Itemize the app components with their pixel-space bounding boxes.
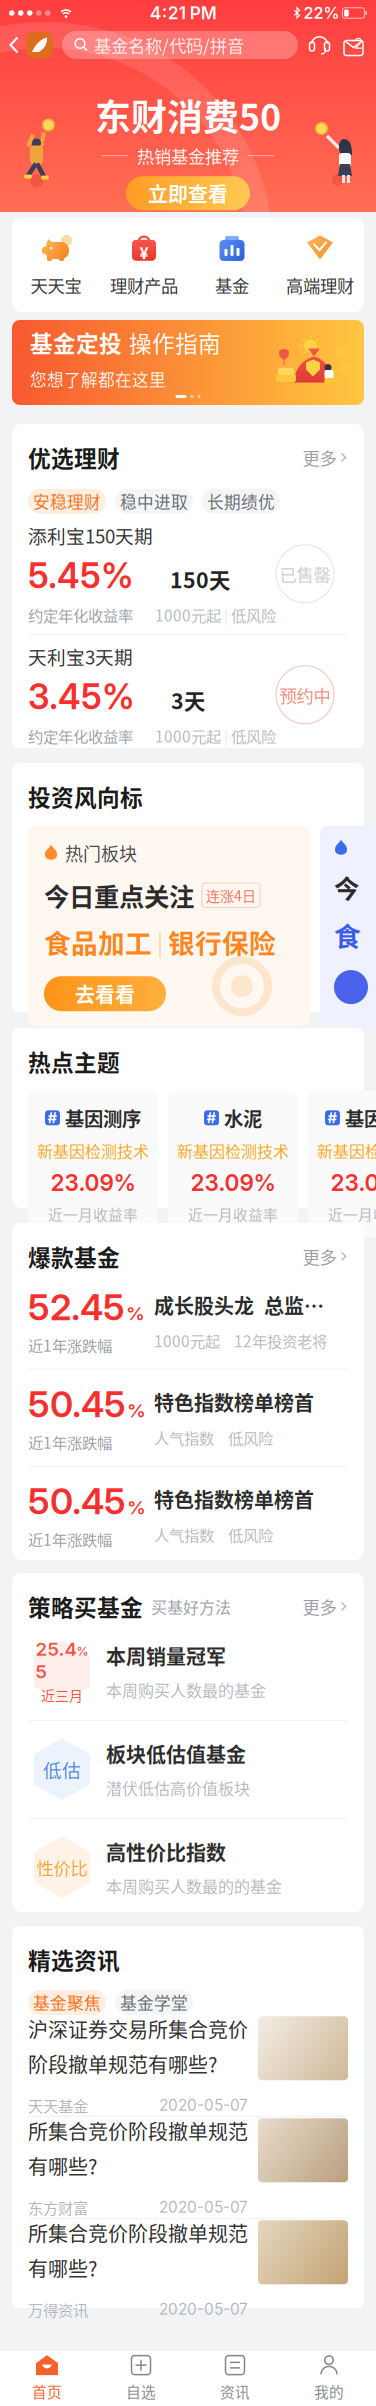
staticText: #	[206, 1109, 216, 1127]
staticText: 低风险	[228, 1523, 273, 1546]
button[interactable]: 长期绩优	[202, 489, 280, 514]
staticText: 约定年化收益率	[28, 604, 133, 626]
staticText: 阶段撤单规范有哪些?	[28, 2049, 217, 2078]
button[interactable]: 自选	[94, 2355, 188, 2402]
staticText: 人气指数	[154, 1523, 214, 1546]
button[interactable]: 返回	[0, 28, 26, 62]
staticText: 天利宝3天期	[28, 643, 133, 670]
button[interactable]: 消息	[337, 29, 376, 60]
button[interactable]: 更多	[303, 1244, 348, 1269]
staticText: 基金聚焦	[33, 1990, 101, 2014]
staticText: 热销基金推荐	[137, 143, 239, 168]
staticText: 新基因检测技术	[37, 1139, 149, 1162]
staticText: 首页	[32, 2381, 62, 2402]
staticText: 12年投资老将	[234, 1329, 327, 1352]
button[interactable]: 我的	[282, 2355, 376, 2402]
staticText: 3.45%	[28, 676, 135, 718]
staticText: 今日重点关注	[44, 877, 194, 914]
button[interactable]: 天天宝	[12, 232, 100, 298]
button[interactable]: 客服	[302, 29, 337, 61]
staticText: 今	[334, 869, 359, 905]
staticText: 基因测序	[65, 1104, 141, 1132]
staticText: 2020-05-07	[159, 2300, 248, 2319]
staticText: 50.45	[28, 1382, 126, 1426]
staticText: 立即查看	[148, 179, 228, 208]
staticText: 4:21 PM	[150, 2, 217, 23]
staticText: |	[152, 925, 168, 958]
button[interactable]: 基金名称/代码/拼音	[53, 31, 302, 59]
staticText: 25.45	[35, 1638, 76, 1683]
button[interactable]: 50.45	[12, 1370, 364, 1466]
staticText: 5.45%	[28, 555, 134, 597]
button[interactable]: ¥	[100, 232, 188, 298]
button[interactable]: 52.45	[12, 1273, 364, 1369]
staticText: 所集合竞价阶段撤单规范	[28, 2218, 248, 2247]
button[interactable]: 热门板块	[28, 826, 310, 1026]
staticText: 约定年化收益率	[28, 725, 133, 747]
staticText: 潜伏低估高价值板块	[106, 1776, 250, 1799]
button[interactable]: 所集合竞价阶段撤单规范	[12, 2219, 364, 2320]
staticText: 策略买基金	[28, 1590, 143, 1623]
button[interactable]: 首页	[0, 2355, 94, 2402]
button[interactable]: 更多	[303, 1594, 348, 1619]
staticText: 50.45	[28, 1479, 126, 1523]
staticText: 东财消费50	[95, 89, 281, 141]
button[interactable]: 性价比	[12, 1819, 364, 1916]
button[interactable]: 沪深证券交易所集合竞价	[12, 2015, 364, 2116]
button[interactable]: 添利宝150天期	[12, 514, 364, 634]
button[interactable]: 立即查看	[126, 176, 250, 210]
button[interactable]: 基金聚焦	[28, 1990, 106, 2015]
staticText: 2	[354, 34, 363, 52]
staticText: 热门板块	[65, 840, 137, 866]
staticText: 食	[334, 915, 361, 954]
staticText: 您想了解都在这里	[30, 367, 166, 391]
staticText: 自选	[126, 2381, 156, 2402]
staticText: 23.09%	[190, 1169, 275, 1196]
staticText: #	[47, 1109, 57, 1127]
staticText: |	[221, 725, 231, 746]
staticText: 1000元起	[155, 725, 221, 747]
staticText: 所集合竞价阶段撤单规范	[28, 2116, 248, 2145]
button[interactable]: 基金定投	[0, 320, 376, 405]
staticText: 水泥	[224, 1104, 262, 1132]
staticText: %	[126, 1302, 145, 1325]
button[interactable]: 50.45	[12, 1467, 364, 1563]
button[interactable]: 天利宝3天期	[12, 635, 364, 755]
staticText: 预约中	[279, 682, 330, 707]
staticText: 特色指数榜单榜首	[154, 1387, 314, 1416]
button[interactable]: 高端理财	[276, 232, 364, 298]
button[interactable]: 资讯	[188, 2355, 282, 2402]
button[interactable]: 稳中进取	[115, 489, 193, 514]
staticText: %	[127, 1496, 146, 1519]
staticText: 资讯	[220, 2381, 250, 2402]
staticText: 万得资讯	[28, 2298, 88, 2320]
button[interactable]: 基金学堂	[115, 1990, 193, 2015]
staticText: 基金学堂	[120, 1990, 188, 2014]
button[interactable]: #	[28, 1091, 158, 1238]
staticText: 基金	[215, 272, 249, 298]
staticText: 有哪些?	[28, 2151, 97, 2180]
button[interactable]: 天天基金	[26, 25, 53, 64]
staticText: 2020-05-07	[159, 2198, 248, 2217]
button[interactable]: 所集合竞价阶段撤单规范	[12, 2117, 364, 2218]
staticText: 爆款基金	[28, 1240, 120, 1273]
button[interactable]: 安稳理财	[28, 489, 106, 514]
staticText: 新基因检测技术	[177, 1139, 289, 1162]
staticText: %	[127, 1399, 146, 1422]
staticText: 近1年涨跌幅	[28, 1431, 112, 1453]
staticText: 1000元起	[154, 1329, 220, 1352]
staticText: 近1年涨跌幅	[28, 1334, 112, 1356]
button[interactable]: 更多	[303, 445, 348, 470]
button[interactable]: #	[308, 1091, 376, 1238]
staticText: 基金定投	[30, 326, 122, 359]
staticText: #	[327, 1109, 337, 1127]
staticText: 沪深证券交易所集合竞价	[28, 2014, 248, 2043]
button[interactable]: 低估	[12, 1721, 364, 1818]
button[interactable]: 25.45	[12, 1623, 364, 1720]
staticText: 买基好方法	[143, 1595, 231, 1618]
staticText: 有哪些?	[28, 2253, 97, 2282]
button[interactable]: #	[168, 1091, 298, 1238]
staticText: 高性价比指数	[106, 1837, 226, 1866]
button[interactable]: 基金	[188, 232, 276, 298]
staticText: 近1年涨跌幅	[28, 1528, 112, 1550]
